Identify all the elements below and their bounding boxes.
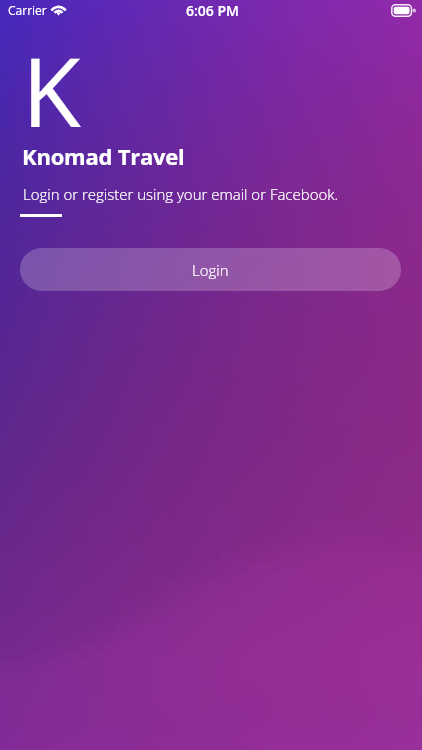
- staticText: Login: [192, 260, 229, 280]
- button[interactable]: Login: [20, 248, 401, 291]
- staticText: K: [22, 24, 81, 155]
- staticText: Knomad Travel: [22, 141, 185, 171]
- staticText: Carrier: [8, 2, 47, 18]
- staticText: Login or register using your email or Fa…: [23, 184, 339, 204]
- other: Wi-Fi: [50, 3, 67, 16]
- staticText: 6:06 PM: [186, 1, 239, 20]
- other: Battery full: [391, 4, 416, 17]
